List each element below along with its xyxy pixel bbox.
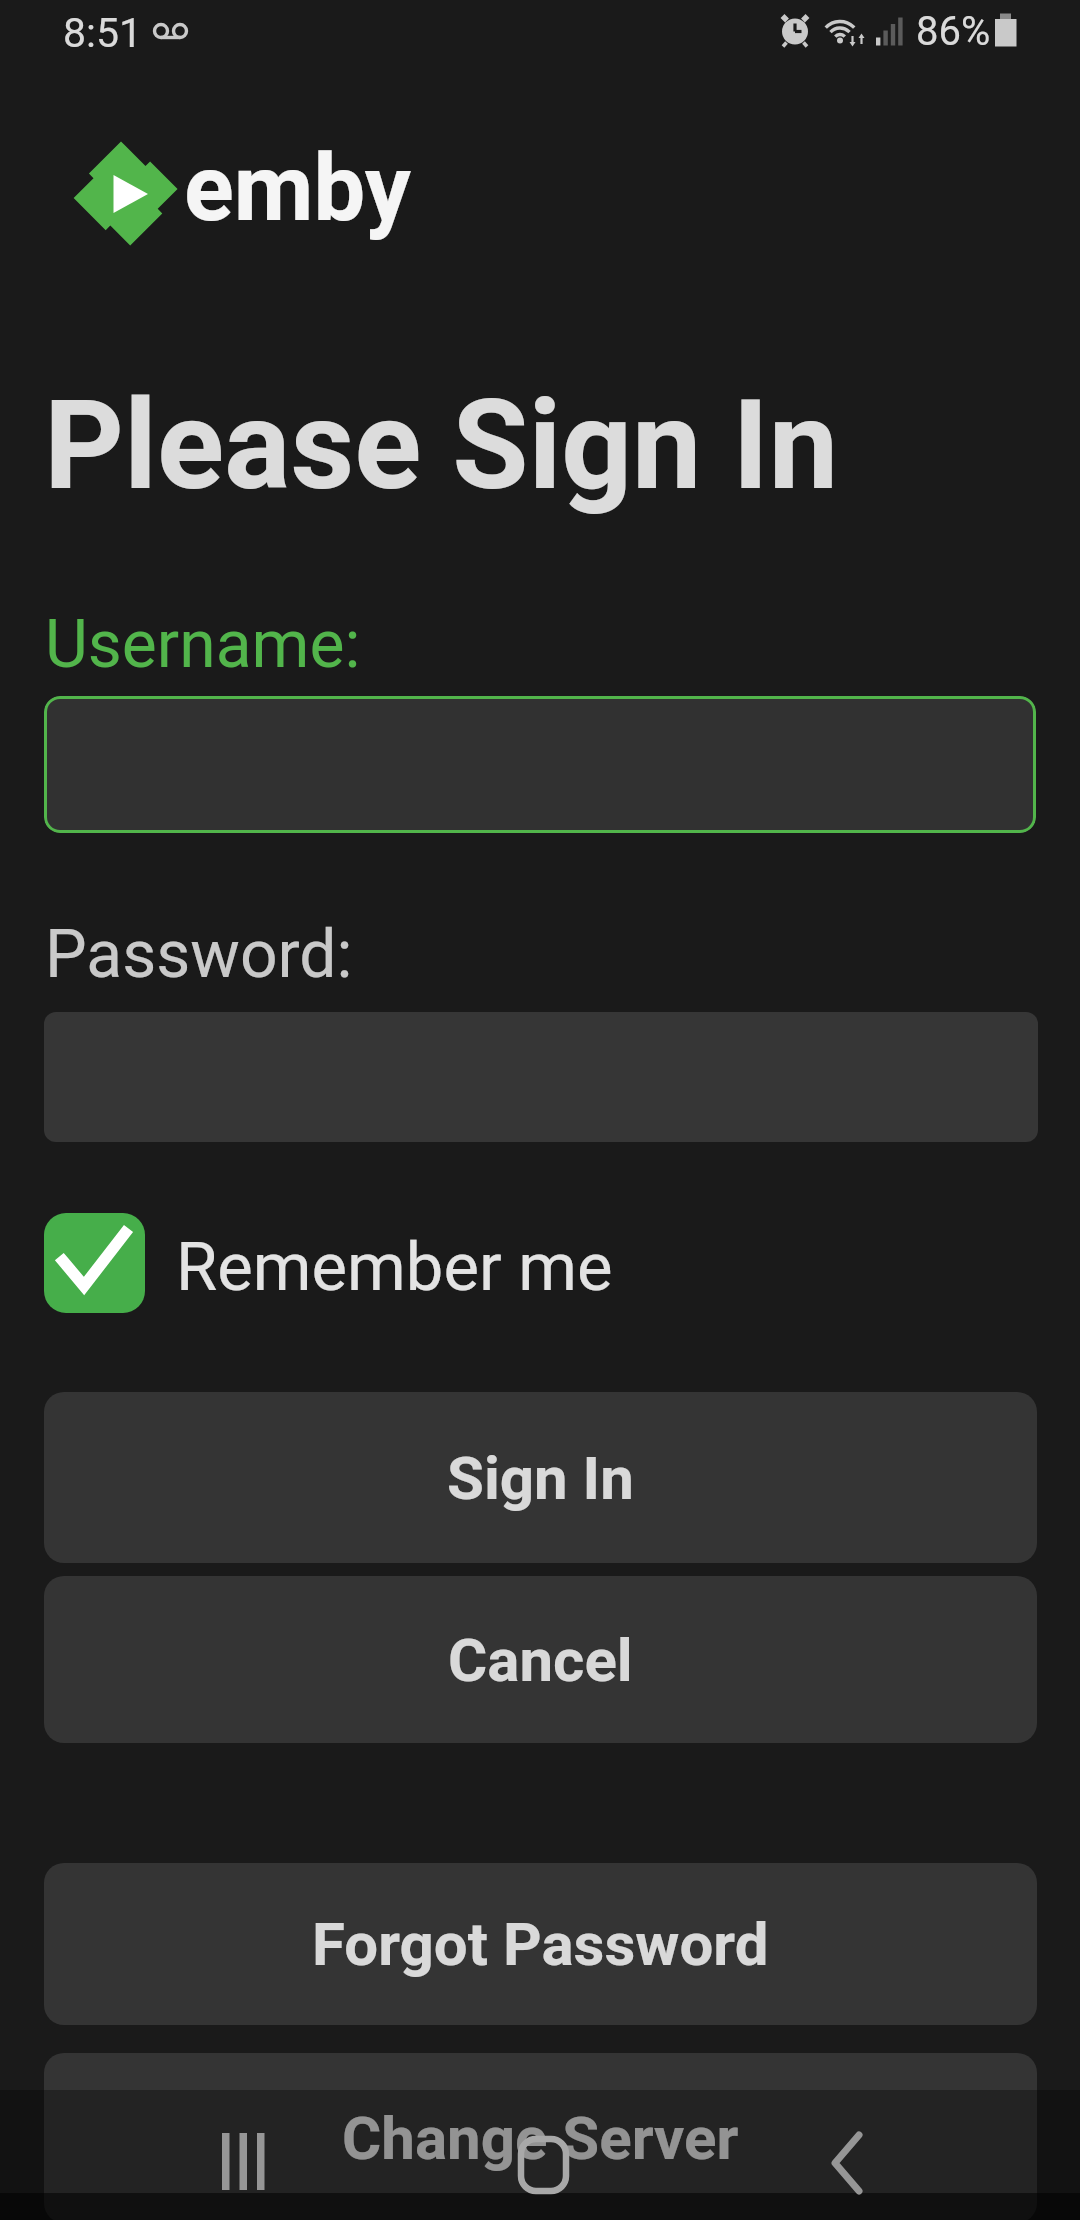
staticText: emby: [184, 135, 411, 243]
staticText: Sign In: [447, 1443, 634, 1513]
staticText: Username:: [45, 606, 361, 683]
staticText: Cancel: [448, 1625, 633, 1695]
staticText: Forgot Password: [312, 1909, 769, 1979]
staticText: 86%: [916, 8, 991, 55]
button[interactable]: [44, 696, 1036, 833]
staticText: Change Server: [342, 2103, 739, 2173]
staticText: 8:51: [63, 9, 143, 57]
button[interactable]: Change Server: [44, 2053, 1037, 2220]
button[interactable]: [44, 1213, 145, 1313]
button[interactable]: Sign In: [44, 1392, 1037, 1563]
staticText: Password:: [45, 916, 353, 993]
staticText: Please Sign In: [44, 373, 839, 518]
button[interactable]: Cancel: [44, 1576, 1037, 1743]
button[interactable]: Forgot Password: [44, 1863, 1037, 2025]
staticText: Remember me: [176, 1228, 613, 1307]
